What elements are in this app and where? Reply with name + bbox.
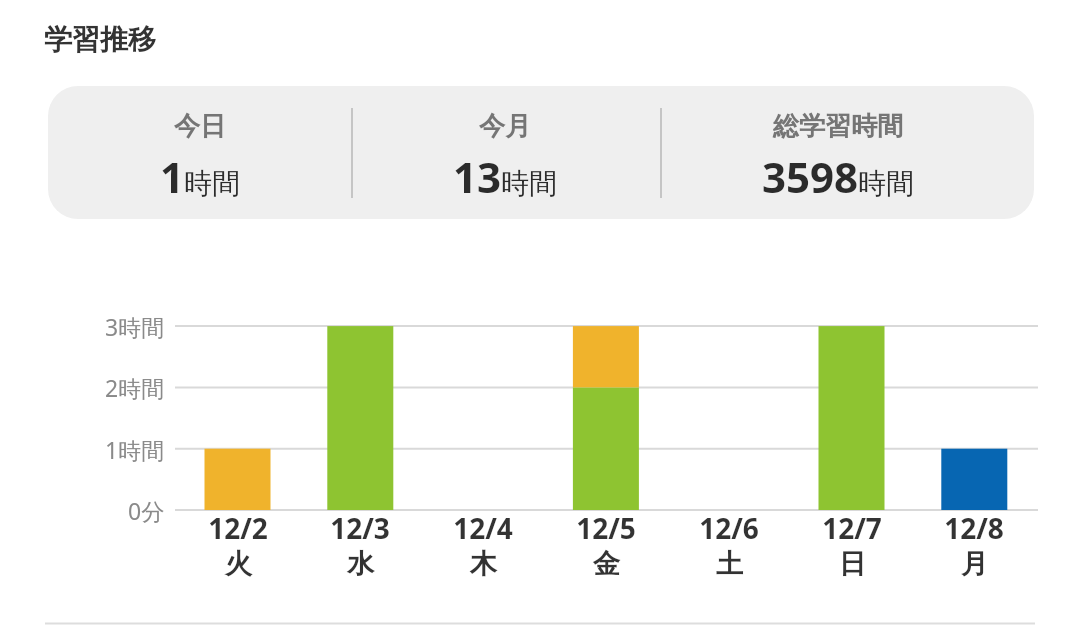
staticText: 今日 bbox=[174, 110, 226, 143]
staticText: 月 bbox=[961, 547, 988, 581]
staticText: 水 bbox=[347, 547, 374, 581]
staticText: 13時間 bbox=[453, 148, 558, 202]
staticText: 学習推移 bbox=[44, 22, 156, 57]
staticText: 2時間 bbox=[105, 372, 165, 403]
staticText: 1時間 bbox=[160, 148, 241, 202]
staticText: 火 bbox=[225, 547, 252, 581]
staticText: 12/7 bbox=[822, 509, 882, 547]
staticText: 12/6 bbox=[699, 509, 759, 547]
staticText: 今月 bbox=[479, 110, 531, 143]
staticText: 12/2 bbox=[208, 509, 268, 547]
staticText: 3時間 bbox=[105, 311, 165, 342]
staticText: 12/5 bbox=[576, 509, 636, 547]
staticText: 0分 bbox=[128, 495, 165, 526]
staticText: 金 bbox=[593, 547, 620, 581]
staticText: 総学習時間 bbox=[773, 110, 903, 143]
staticText: 1時間 bbox=[105, 434, 165, 465]
staticText: 3598時間 bbox=[762, 148, 915, 202]
staticText: 12/3 bbox=[330, 509, 390, 547]
staticText: 木 bbox=[470, 547, 497, 581]
staticText: 日 bbox=[839, 547, 866, 581]
staticText: 12/8 bbox=[944, 509, 1004, 547]
staticText: 12/4 bbox=[453, 509, 513, 547]
staticText: 土 bbox=[716, 547, 743, 581]
button[interactable] bbox=[48, 86, 1034, 219]
